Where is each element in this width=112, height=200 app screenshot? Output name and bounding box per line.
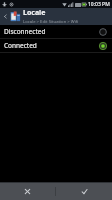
button[interactable]: Cancel xyxy=(0,183,55,200)
staticText: 10:03 PM xyxy=(88,1,110,8)
staticText: Locale xyxy=(23,8,46,18)
button[interactable]: Disconnected xyxy=(0,25,112,38)
staticText: Locale > Edit Situation > Wifi xyxy=(23,19,79,25)
staticText: Connected xyxy=(4,41,99,50)
button[interactable]: Connected xyxy=(0,39,112,52)
button[interactable]: Back xyxy=(0,8,112,25)
staticText: Disconnected xyxy=(4,27,99,36)
button[interactable]: Done xyxy=(56,183,112,200)
button[interactable]: Back xyxy=(2,13,9,20)
